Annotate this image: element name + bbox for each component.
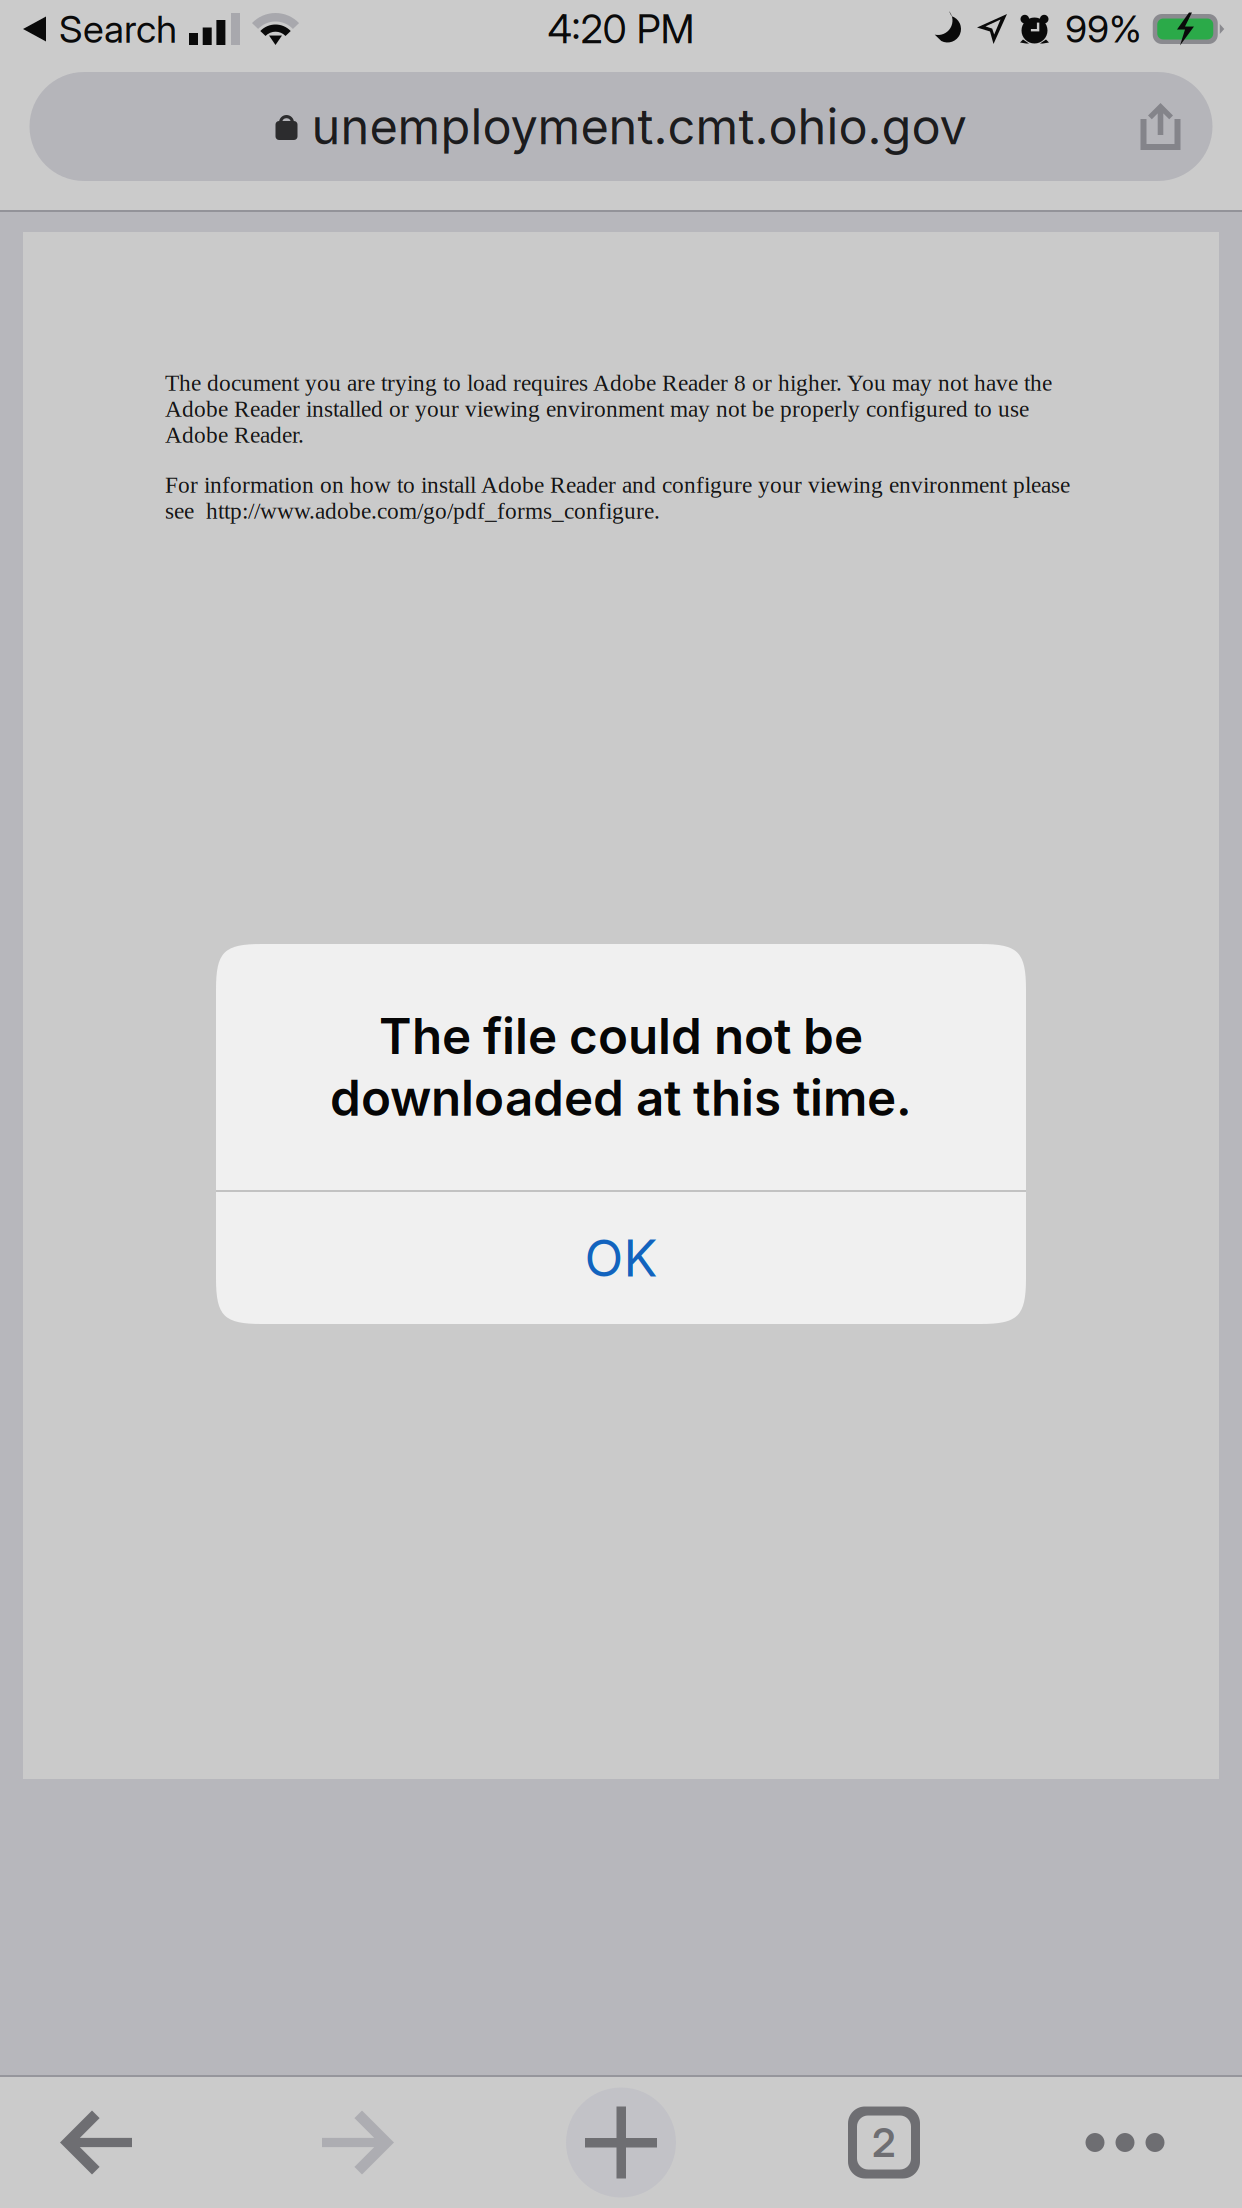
staticText: unemployment.cmt.ohio.gov	[311, 97, 966, 156]
staticText: downloaded at this time.	[330, 1068, 912, 1128]
staticText: 99%	[1065, 6, 1142, 52]
staticText: see http://www.adobe.com/go/pdf_forms_co…	[165, 498, 660, 524]
staticText: Search	[59, 6, 177, 52]
staticText: OK	[584, 1227, 657, 1289]
staticText: 2	[872, 2118, 896, 2167]
staticText: The file could not be	[379, 1006, 863, 1066]
button[interactable]: Back	[0, 2077, 192, 2208]
button[interactable]: More	[1029, 2077, 1221, 2208]
staticText: 4:20 PM	[547, 5, 694, 53]
button[interactable]: New Tab	[525, 2077, 717, 2208]
button[interactable]: Tabs	[788, 2077, 980, 2208]
button[interactable]: OK	[216, 1192, 1026, 1324]
staticText: Adobe Reader installed or your viewing e…	[165, 396, 1029, 422]
button[interactable]: Forward	[262, 2077, 454, 2208]
staticText: For information on how to install Adobe …	[165, 472, 1070, 498]
staticText: The document you are trying to load requ…	[165, 370, 1052, 396]
staticText: Adobe Reader.	[165, 422, 304, 448]
button[interactable]: unemployment.cmt.ohio.gov	[29, 72, 1212, 181]
button[interactable]: Share	[1108, 72, 1212, 181]
